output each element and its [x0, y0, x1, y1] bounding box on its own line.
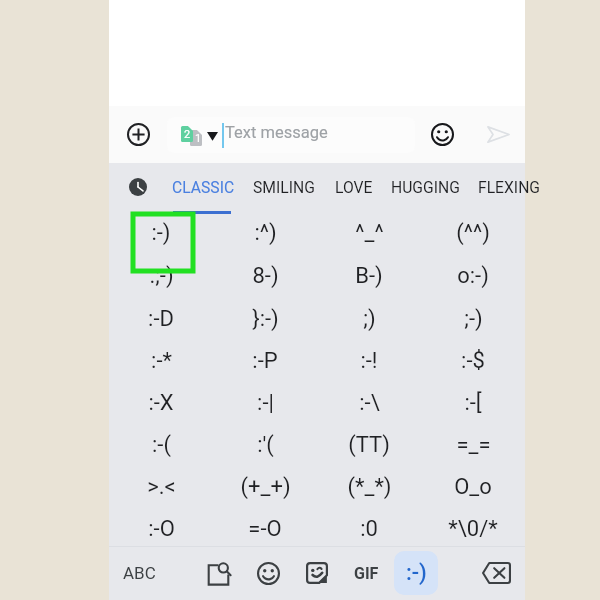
button[interactable]: *\0/*: [421, 508, 525, 550]
button[interactable]: Backspace: [475, 551, 519, 595]
staticText: LOVE: [335, 178, 373, 196]
button[interactable]: (+_+): [213, 466, 317, 508]
staticText: o:-): [457, 263, 489, 289]
staticText: :-[: [464, 390, 482, 416]
staticText: }:-): [252, 306, 279, 332]
button[interactable]: B-): [317, 254, 421, 297]
staticText: :-): [406, 560, 427, 586]
staticText: :0: [360, 516, 378, 542]
button[interactable]: ABC: [111, 552, 167, 594]
staticText: SMILING: [253, 178, 315, 196]
button[interactable]: Attach: [118, 114, 158, 154]
staticText: ;): [363, 306, 376, 332]
button[interactable]: GIF: [344, 552, 388, 594]
staticText: :^): [254, 220, 277, 246]
button[interactable]: Emoji: [422, 114, 462, 154]
button[interactable]: (^^): [421, 211, 525, 254]
staticText: ;-): [464, 306, 483, 332]
button[interactable]: :-\: [317, 382, 421, 424]
button[interactable]: =_=: [421, 424, 525, 466]
button[interactable]: Send: [478, 114, 518, 154]
button[interactable]: =-O: [213, 508, 317, 550]
staticText: >.<: [147, 474, 176, 500]
button[interactable]: (TT): [317, 424, 421, 466]
button[interactable]: :-O: [109, 508, 213, 550]
staticText: :-O: [148, 516, 175, 542]
button[interactable]: 8-): [213, 254, 317, 297]
button[interactable]: :-[: [421, 382, 525, 424]
button[interactable]: HUGGING: [391, 165, 460, 209]
staticText: :-): [151, 220, 171, 246]
button[interactable]: (*_*): [317, 466, 421, 508]
staticText: =_=: [456, 432, 491, 458]
button[interactable]: :-): [394, 551, 438, 595]
button[interactable]: :-(: [109, 424, 213, 466]
staticText: B-): [355, 263, 383, 289]
button[interactable]: Recently used: [123, 172, 153, 202]
button[interactable]: Emoji: [246, 551, 290, 595]
staticText: GIF: [354, 564, 379, 583]
staticText: :-|: [257, 390, 274, 416]
button[interactable]: :-!: [317, 340, 421, 382]
staticText: 8-): [252, 263, 279, 289]
staticText: :-X: [148, 390, 174, 416]
button[interactable]: CLASSIC: [172, 165, 235, 209]
button[interactable]: O_o: [421, 466, 525, 508]
staticText: Text message: [225, 123, 328, 142]
button[interactable]: :-P: [213, 340, 317, 382]
button[interactable]: :-|: [213, 382, 317, 424]
button[interactable]: Stickers: [295, 551, 339, 595]
staticText: :-D: [148, 306, 174, 332]
staticText: HUGGING: [391, 178, 460, 196]
staticText: ^_^: [355, 220, 384, 246]
staticText: CLASSIC: [172, 178, 235, 196]
staticText: :-(: [152, 432, 171, 458]
staticText: =-O: [248, 516, 282, 542]
button[interactable]: Search stickers: [197, 551, 241, 595]
button[interactable]: :^): [213, 211, 317, 254]
button[interactable]: :0: [317, 508, 421, 550]
staticText: (*_*): [347, 474, 392, 500]
staticText: 2: [184, 128, 191, 141]
button[interactable]: ;-): [421, 297, 525, 340]
button[interactable]: LOVE: [335, 165, 373, 209]
button[interactable]: :-$: [421, 340, 525, 382]
staticText: (+_+): [240, 474, 291, 500]
staticText: :-*: [151, 348, 172, 374]
staticText: :-!: [360, 348, 378, 374]
button[interactable]: ^_^: [317, 211, 421, 254]
button[interactable]: :-D: [109, 297, 213, 340]
button[interactable]: >.<: [109, 466, 213, 508]
staticText: O_o: [454, 474, 492, 500]
button[interactable]: 1: [167, 117, 415, 153]
staticText: :-$: [461, 348, 485, 374]
staticText: :-\: [359, 390, 380, 416]
staticText: ABC: [123, 563, 156, 583]
staticText: FLEXING: [478, 178, 541, 196]
button[interactable]: :'(: [213, 424, 317, 466]
button[interactable]: SMILING: [253, 165, 315, 209]
staticText: .;-): [149, 263, 174, 289]
staticText: 1: [195, 132, 202, 145]
button[interactable]: :-): [109, 211, 213, 254]
staticText: :-P: [252, 348, 278, 374]
staticText: (^^): [456, 220, 490, 246]
button[interactable]: FLEXING: [478, 165, 541, 209]
button[interactable]: :-*: [109, 340, 213, 382]
staticText: *\0/*: [448, 516, 498, 542]
button[interactable]: :-X: [109, 382, 213, 424]
staticText: (TT): [348, 432, 390, 458]
staticText: :'(: [257, 432, 274, 458]
button[interactable]: }:-): [213, 297, 317, 340]
button[interactable]: ;): [317, 297, 421, 340]
button[interactable]: .;-): [109, 254, 213, 297]
button[interactable]: o:-): [421, 254, 525, 297]
